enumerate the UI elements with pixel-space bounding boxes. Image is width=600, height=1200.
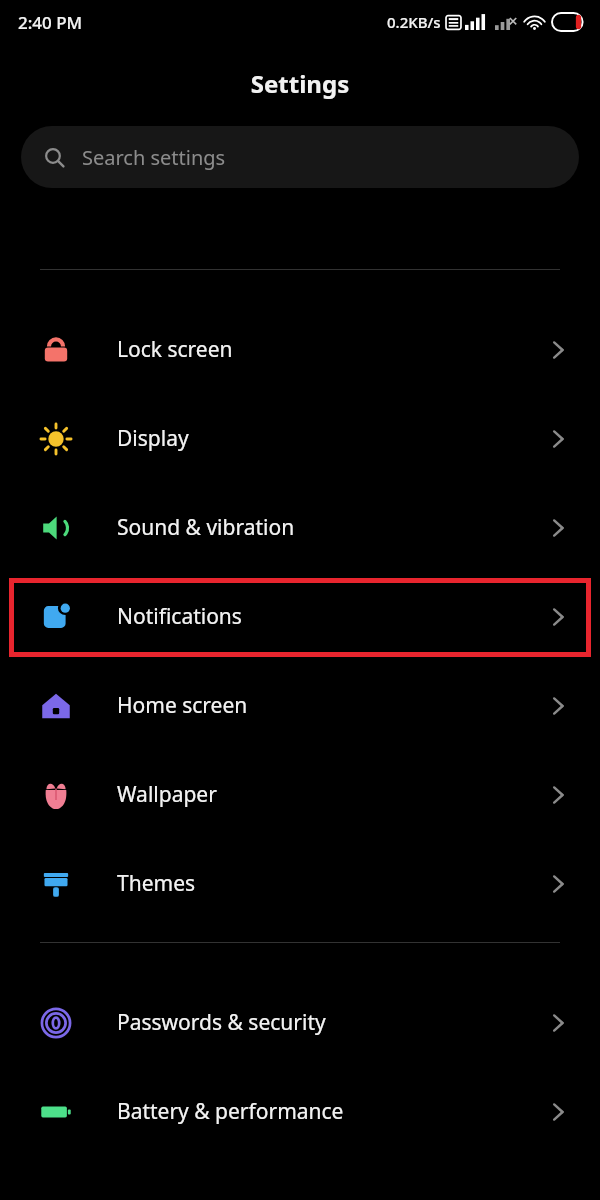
staticText: 2:40 PM (18, 11, 83, 34)
staticText: Sound & vibration (117, 513, 552, 542)
button[interactable]: Notifications (0, 572, 600, 661)
staticText: Home screen (117, 691, 552, 720)
button[interactable]: Battery & performance (0, 1067, 600, 1156)
staticText: Settings (0, 67, 600, 100)
button[interactable]: Lock screen (0, 305, 600, 394)
button[interactable]: Passwords & security (0, 978, 600, 1067)
staticText: 0.2KB/s (387, 12, 441, 32)
staticText: Lock screen (117, 335, 552, 364)
button[interactable]: Sound & vibration (0, 483, 600, 572)
staticText: Display (117, 424, 552, 453)
staticText: Search settings (82, 144, 226, 171)
staticText: Notifications (117, 602, 552, 631)
button[interactable]: Search settings (21, 126, 579, 188)
button[interactable]: Home screen (0, 661, 600, 750)
staticText: Battery & performance (117, 1097, 552, 1126)
staticText: Themes (117, 869, 552, 898)
button[interactable]: Wallpaper (0, 750, 600, 839)
button[interactable]: Themes (0, 839, 600, 928)
staticText: Wallpaper (117, 780, 552, 809)
button[interactable]: Display (0, 394, 600, 483)
staticText: Passwords & security (117, 1008, 552, 1037)
